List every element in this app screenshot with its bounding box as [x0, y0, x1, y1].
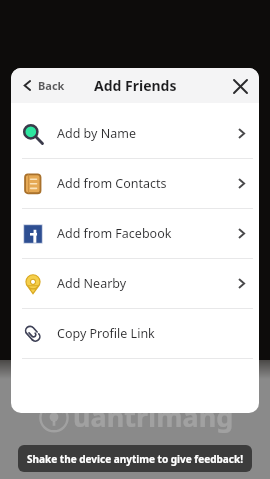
- button[interactable]: Close: [227, 73, 253, 99]
- staticText: Shake the device anytime to give feedbac…: [27, 452, 243, 466]
- staticText: Add from Facebook: [57, 225, 172, 242]
- staticText: Add from Contacts: [57, 175, 167, 192]
- button[interactable]: Add from Contacts: [11, 159, 259, 208]
- staticText: Add Friends: [94, 76, 177, 95]
- button[interactable]: Add by Name: [11, 109, 259, 158]
- staticText: Back: [38, 78, 65, 93]
- button[interactable]: Copy Profile Link: [11, 309, 259, 358]
- staticText: uantrimang: [73, 398, 234, 435]
- button[interactable]: Shake the device anytime to give feedbac…: [18, 445, 252, 472]
- staticText: Add Nearby: [57, 275, 127, 292]
- button[interactable]: Add from Facebook: [11, 209, 259, 258]
- staticText: Add by Name: [57, 125, 136, 142]
- button[interactable]: Back: [17, 74, 69, 97]
- staticText: Copy Profile Link: [57, 325, 155, 342]
- button[interactable]: Add Nearby: [11, 259, 259, 308]
